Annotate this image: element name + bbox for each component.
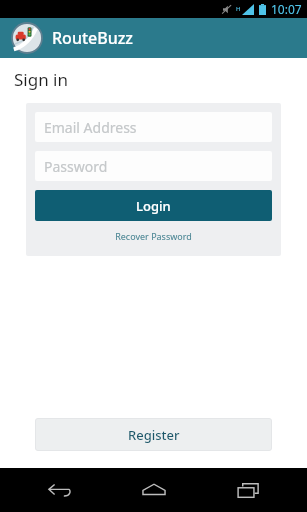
button[interactable]: Email Address xyxy=(35,112,272,142)
button[interactable]: Home xyxy=(119,468,189,512)
button[interactable]: Back xyxy=(24,468,94,512)
staticText: Login xyxy=(136,197,171,215)
staticText: Recover Password xyxy=(115,230,192,242)
staticText: RouteBuzz xyxy=(52,27,133,49)
staticText: Password xyxy=(44,157,108,176)
staticText: Email Address xyxy=(44,118,137,137)
button[interactable]: Recents xyxy=(213,468,283,512)
button[interactable]: Login xyxy=(35,190,272,221)
button[interactable]: Password xyxy=(35,151,272,181)
staticText: Sign in xyxy=(14,68,68,91)
staticText: 10:07 xyxy=(271,1,302,17)
staticText: Register xyxy=(128,426,180,444)
button[interactable]: Recover Password xyxy=(35,227,272,245)
staticText: H xyxy=(236,5,241,13)
button[interactable]: Register xyxy=(35,418,272,451)
